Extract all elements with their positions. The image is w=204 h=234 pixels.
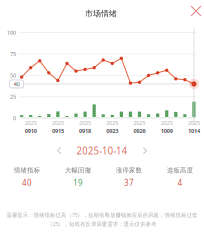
staticText: 40 <box>22 177 32 188</box>
staticText: 2025 <box>133 119 145 127</box>
staticText: 2025 <box>161 119 173 127</box>
button[interactable]: 情绪指标 <box>2 166 53 188</box>
staticText: 0918 <box>79 127 91 135</box>
button[interactable]: 涨停家数 <box>104 166 155 188</box>
staticText: 市场情绪 <box>85 8 117 19</box>
staticText: 4 <box>178 177 183 188</box>
staticText: 0926 <box>133 127 145 135</box>
staticText: 2025-10-14 <box>75 144 129 157</box>
staticText: 0910 <box>25 127 37 135</box>
staticText: 1009 <box>161 127 173 135</box>
staticText: 2025 <box>52 119 64 127</box>
staticText: 2025 <box>106 119 118 127</box>
staticText: 大幅回撤 <box>64 166 92 175</box>
button[interactable]: 连板高度 <box>155 166 204 188</box>
button[interactable]: Next day <box>138 143 151 159</box>
staticText: 涨停家数 <box>115 166 143 175</box>
staticText: 19 <box>73 177 83 188</box>
staticText: 75 <box>10 50 16 58</box>
staticText: 2025 <box>79 119 91 127</box>
staticText: 温馨提示：情绪指标过高（75），短期有释放赚钱效应后的风险；情绪指标过低 <box>0 211 204 219</box>
staticText: 0915 <box>52 127 64 135</box>
staticText: 2025 <box>188 119 200 127</box>
staticText: 2025 <box>25 119 37 127</box>
button[interactable]: Close <box>185 0 204 22</box>
staticText: 连板高度 <box>166 166 194 175</box>
staticText: 0923 <box>106 127 118 135</box>
button[interactable]: Previous day <box>52 143 66 159</box>
staticText: 1014 <box>188 127 200 135</box>
staticText: 50 <box>10 72 16 79</box>
staticText: 0 <box>13 115 16 122</box>
staticText: （25），短线有反弹回暖需求；显示仅供参考 <box>42 220 162 228</box>
button[interactable]: 2025-10-14 <box>73 142 131 159</box>
staticText: 37 <box>124 177 134 188</box>
staticText: 100 <box>7 29 16 36</box>
staticText: 25 <box>10 93 16 100</box>
staticText: 40 <box>13 80 19 88</box>
staticText: 情绪指标 <box>13 166 41 175</box>
button[interactable]: 大幅回撤 <box>53 166 104 188</box>
